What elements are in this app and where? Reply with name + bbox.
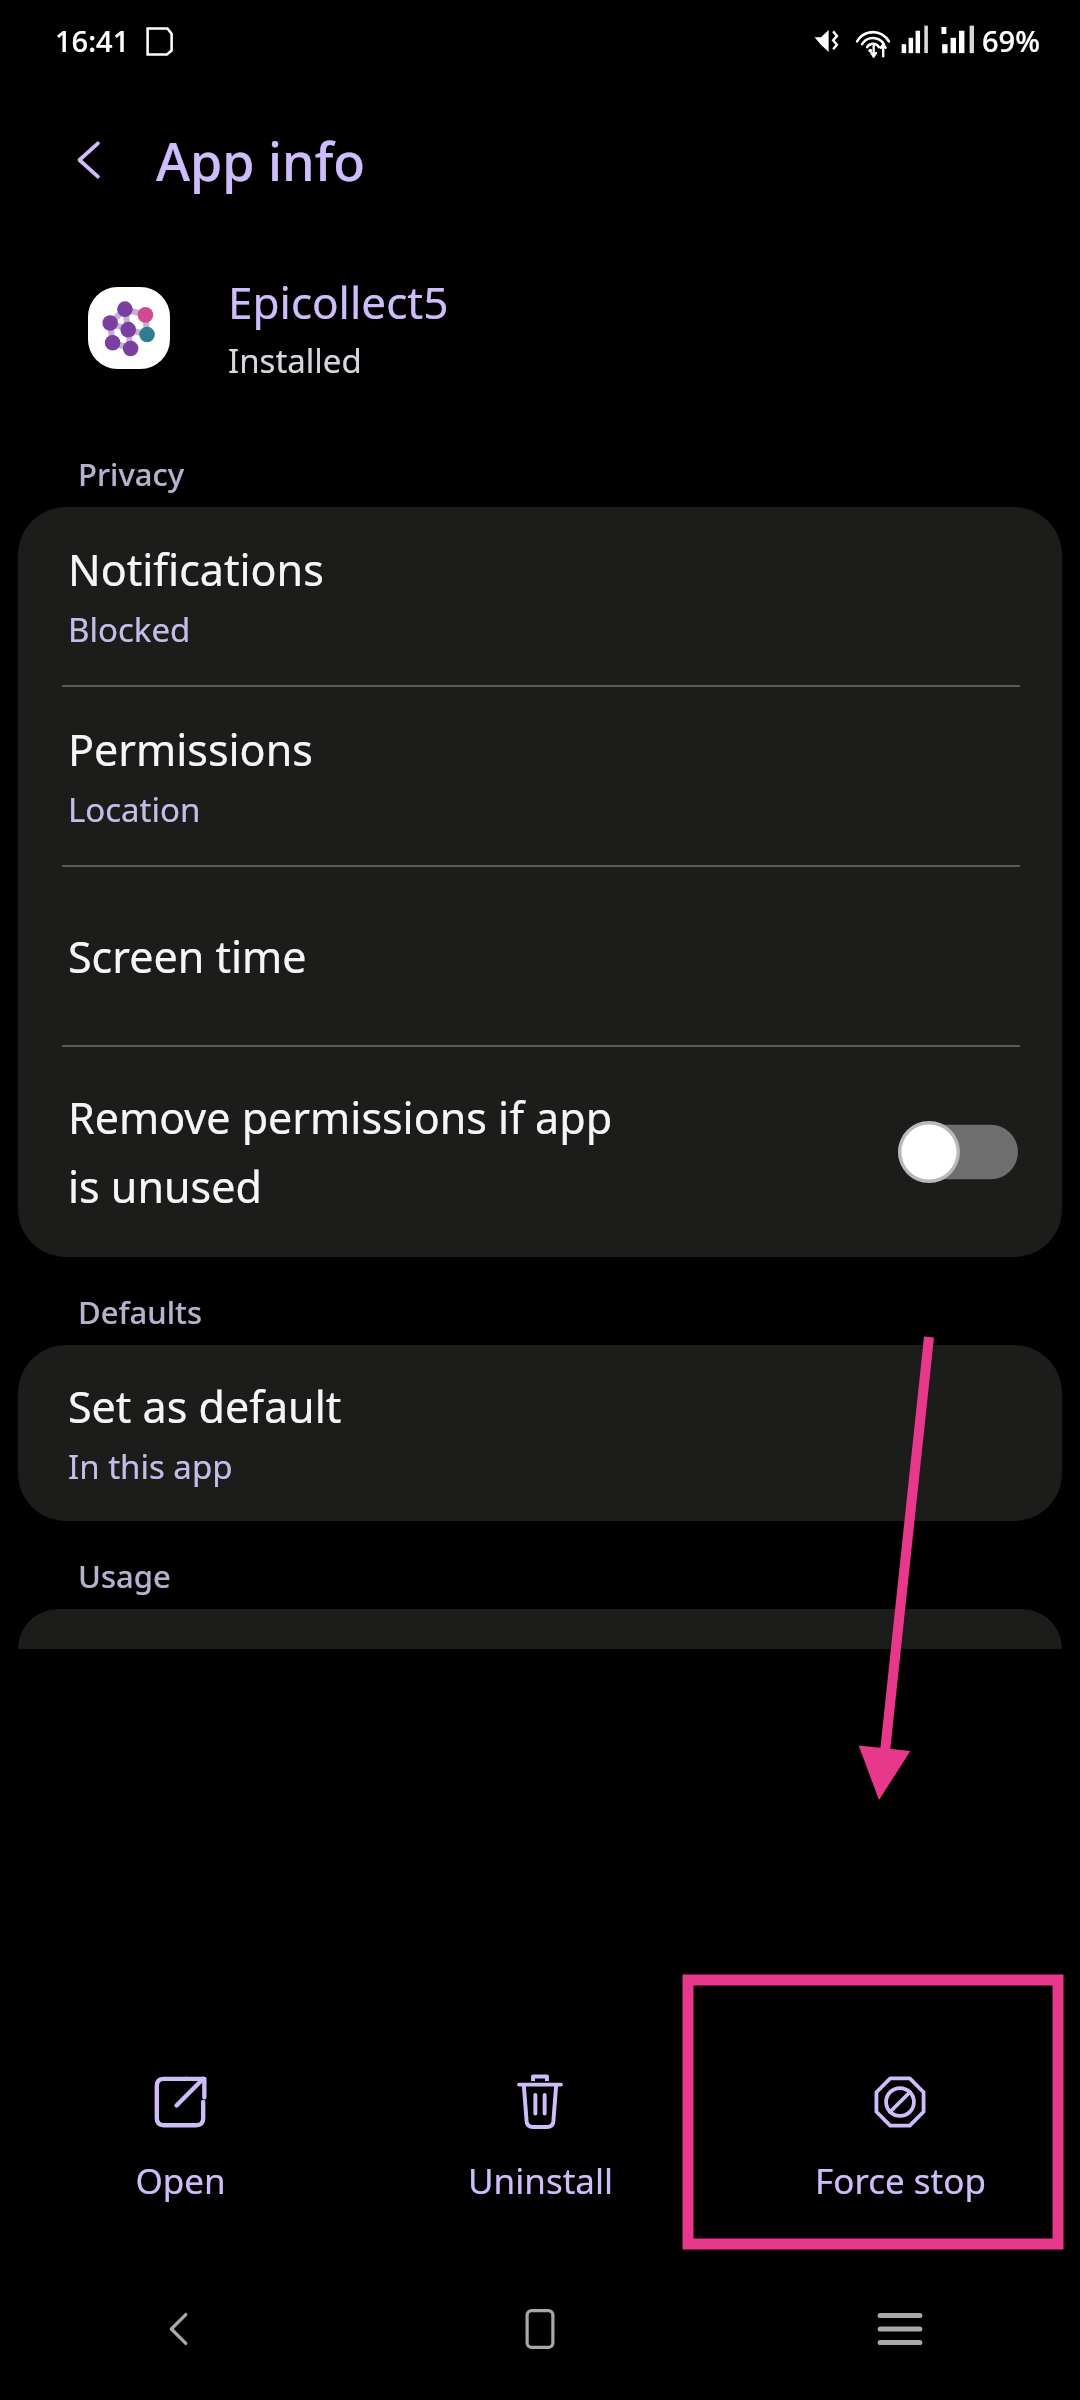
staticText: 69% [982,21,1040,60]
staticText: is unused [68,1157,262,1216]
button[interactable] [18,1609,1062,1649]
staticText: In this app [68,1444,233,1489]
button[interactable]: Epicollect5 [0,240,1080,415]
staticText: Blocked [68,607,191,652]
button[interactable]: Screen time [18,867,1062,1045]
staticText: 16:41 [55,21,130,60]
button[interactable]: Remove permissions if app [18,1047,1062,1257]
staticText: App info [156,125,366,196]
button[interactable]: Permissions [18,687,1062,865]
button[interactable]: Remove permissions toggle [898,1121,1018,1183]
staticText: Epicollect5 [228,272,449,332]
staticText: Force stop [815,2157,986,2205]
button[interactable]: Recents [720,2258,1080,2400]
button[interactable]: Back [50,120,130,200]
staticText: Notifications [68,540,324,599]
staticText: Permissions [68,720,313,779]
button[interactable]: Back [0,2258,360,2400]
staticText: Remove permissions if app [68,1088,613,1147]
staticText: Screen time [68,927,307,986]
button[interactable]: Set as default [18,1345,1062,1521]
button[interactable]: Home [360,2258,720,2400]
button[interactable]: Notifications [18,507,1062,685]
staticText: Set as default [68,1377,342,1436]
button[interactable]: Uninstall [360,2073,720,2205]
staticText: Usage [78,1555,171,1597]
staticText: Uninstall [468,2157,613,2205]
staticText: Privacy [78,453,185,495]
staticText: Defaults [78,1291,202,1333]
staticText: Open [135,2157,226,2205]
staticText: Location [68,787,201,832]
button[interactable]: Open [0,2073,360,2205]
staticText: Installed [228,338,362,383]
button[interactable]: Force stop [720,2073,1080,2205]
